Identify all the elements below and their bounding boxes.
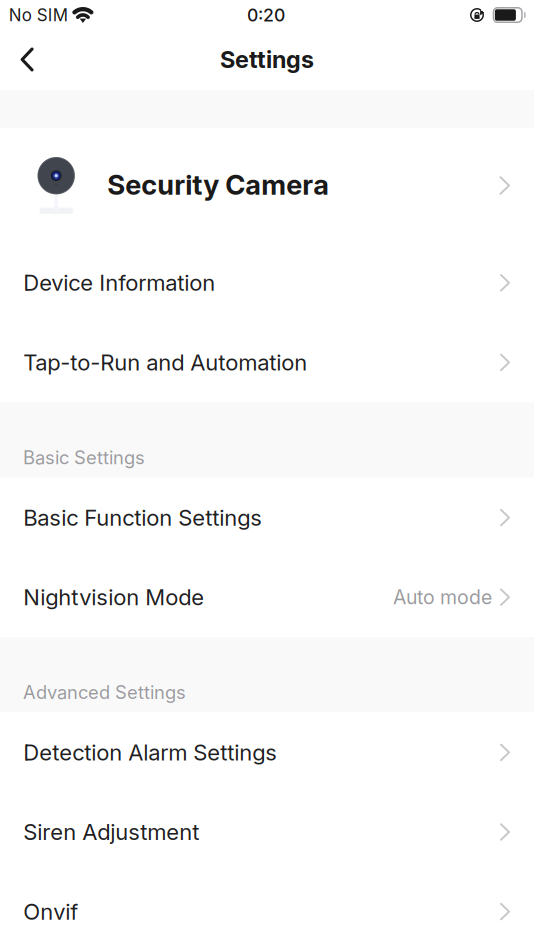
button[interactable]: Nightvision Mode <box>0 557 534 637</box>
staticText: Advanced Settings <box>23 681 186 703</box>
staticText: Settings <box>220 45 314 74</box>
button[interactable]: Security Camera <box>0 128 534 243</box>
staticText: Tap-to-Run and Automation <box>23 349 307 376</box>
button[interactable]: Detection Alarm Settings <box>0 713 534 792</box>
staticText: 0:20 <box>247 4 285 26</box>
staticText: No SIM <box>9 5 68 25</box>
staticText: Basic Settings <box>23 446 145 469</box>
button[interactable]: Tap-to-Run and Automation <box>0 323 534 402</box>
button[interactable]: Onvif <box>0 872 534 950</box>
button[interactable]: Basic Function Settings <box>0 478 534 557</box>
staticText: Basic Function Settings <box>23 504 262 531</box>
button[interactable]: Back <box>0 36 48 90</box>
staticText: Device Information <box>23 269 215 296</box>
staticText: Siren Adjustment <box>23 819 199 845</box>
staticText: Security Camera <box>107 168 329 201</box>
staticText: Nightvision Mode <box>23 584 204 611</box>
staticText: Onvif <box>23 898 78 925</box>
button[interactable]: Siren Adjustment <box>0 792 534 872</box>
staticText: Auto mode <box>393 585 492 609</box>
button[interactable]: Device Information <box>0 243 534 323</box>
staticText: Detection Alarm Settings <box>23 739 277 766</box>
